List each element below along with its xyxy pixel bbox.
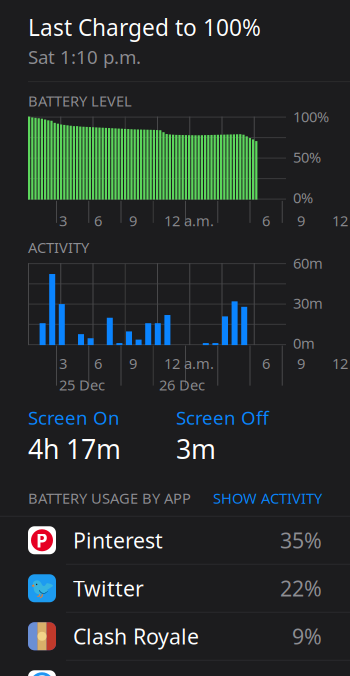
staticText: 6 <box>94 354 102 373</box>
staticText: 60m <box>293 253 323 273</box>
staticText: 50% <box>293 147 321 167</box>
staticText: SHOW ACTIVITY <box>213 488 322 508</box>
staticText: Screen On <box>28 405 120 430</box>
staticText: 4h 17m <box>28 431 121 466</box>
staticText: 9 <box>129 354 137 373</box>
staticText: 6 <box>94 211 102 230</box>
staticText: 6 <box>262 211 270 230</box>
staticText: 12 a.m. <box>164 211 214 230</box>
staticText: Clash Royale <box>73 622 199 650</box>
staticText: 12 <box>332 211 348 230</box>
staticText: 9% <box>292 622 322 650</box>
staticText: 22% <box>280 574 322 602</box>
button[interactable]: SHOW ACTIVITY <box>213 488 322 508</box>
staticText: 9 <box>297 211 305 230</box>
staticText: 3m <box>176 431 216 466</box>
staticText: Last Charged to 100% <box>28 12 261 42</box>
staticText: 26 Dec <box>159 375 205 395</box>
staticText: 3 <box>59 211 67 230</box>
staticText: 9 <box>297 354 305 373</box>
staticText: Screen Off <box>176 405 269 430</box>
staticText: ACTIVITY <box>28 238 89 257</box>
staticText: 25 Dec <box>59 375 105 395</box>
staticText: Pinterest <box>73 526 163 554</box>
staticText: P <box>36 528 48 553</box>
staticText: 0% <box>293 188 313 207</box>
staticText: 12 <box>332 354 348 373</box>
button[interactable]: Safari <box>0 661 350 676</box>
staticText: 9 <box>129 211 137 230</box>
staticText: 30m <box>293 293 323 313</box>
staticText: 6 <box>262 354 270 373</box>
button[interactable]: P <box>0 517 350 564</box>
staticText: 🐦 <box>29 577 54 600</box>
staticText: 100% <box>293 107 329 126</box>
staticText: Twitter <box>73 574 144 602</box>
button[interactable]: 🐦 <box>0 565 350 612</box>
staticText: BATTERY LEVEL <box>28 91 132 111</box>
button[interactable]: Clash Royale <box>0 613 350 660</box>
staticText: 3 <box>59 354 67 373</box>
staticText: Sat 1:10 p.m. <box>28 44 141 69</box>
staticText: 35% <box>280 526 322 554</box>
staticText: 0m <box>293 333 315 353</box>
staticText: 12 a.m. <box>164 354 214 373</box>
staticText: BATTERY USAGE BY APP <box>28 488 191 508</box>
